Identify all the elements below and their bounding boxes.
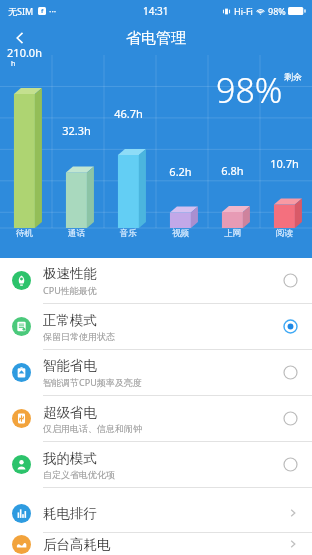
staticText: 6.8h [221,163,244,178]
staticText: 14:31 [143,4,169,18]
button[interactable]: 超级省电 [0,396,312,442]
button[interactable]: Back [0,21,40,55]
button[interactable]: 耗电排行 [0,494,312,533]
staticText: 46.7h [114,106,143,121]
staticText: 极速性能 [43,265,97,282]
staticText: 耗电排行 [43,505,288,522]
staticText: 智能省电 [43,357,97,374]
staticText: 音乐 [120,228,137,239]
button[interactable]: 极速性能 [0,258,312,304]
button[interactable]: 后台高耗电 [0,533,312,555]
staticText: ··· [49,5,57,17]
staticText: 待机 [16,228,33,239]
staticText: 无SIM [8,5,34,17]
staticText: Hi-Fi [234,5,253,17]
staticText: 自定义省电优化项 [43,469,115,480]
staticText: h [11,59,16,69]
staticText: 剩余 [284,71,302,82]
staticText: 省电管理 [126,29,186,48]
staticText: 32.3h [62,123,91,138]
staticText: 超级省电 [43,404,97,421]
staticText: 98% [268,5,286,17]
staticText: 通话 [68,228,85,239]
staticText: 210.0h [7,45,42,60]
button[interactable]: 智能省电 [0,350,312,396]
button[interactable]: 正常模式 [0,304,312,350]
staticText: 我的模式 [43,450,97,467]
staticText: 智能调节CPU频率及亮度 [43,376,142,388]
staticText: 6.2h [169,164,192,179]
staticText: 10.7h [270,156,299,171]
staticText: f [41,7,44,15]
staticText: 仅启用电话、信息和闹钟 [43,423,142,434]
staticText: CPU性能最优 [43,284,97,296]
staticText: 阅读 [276,228,293,239]
staticText: 保留日常使用状态 [43,331,115,342]
staticText: 上网 [224,228,241,239]
staticText: 98% [216,67,283,113]
button[interactable]: 我的模式 [0,442,312,488]
staticText: 后台高耗电 [43,536,288,553]
staticText: 正常模式 [43,312,97,329]
staticText: 视频 [172,228,189,239]
